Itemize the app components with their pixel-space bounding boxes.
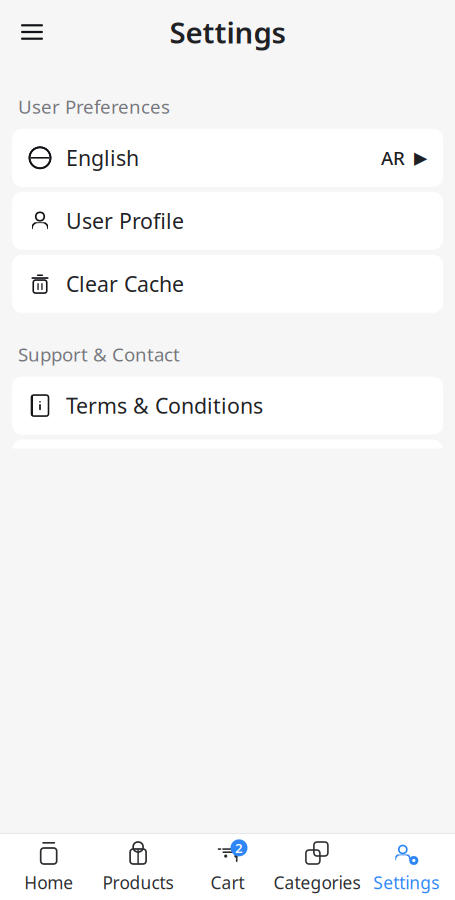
staticText: Home bbox=[24, 871, 73, 894]
staticText: Cart bbox=[210, 871, 244, 894]
staticText: User Profile bbox=[66, 207, 184, 235]
staticText: AR bbox=[381, 145, 405, 170]
staticText: Settings bbox=[373, 871, 439, 894]
button[interactable]: Settings bbox=[362, 834, 451, 900]
staticText: 2 bbox=[235, 839, 243, 857]
staticText: Products bbox=[103, 871, 174, 894]
staticText: ▶ bbox=[414, 148, 427, 168]
staticText: Clear Cache bbox=[66, 270, 184, 298]
staticText: Terms & Conditions bbox=[66, 391, 263, 420]
button[interactable]: Products bbox=[93, 834, 183, 900]
button[interactable]: Menu bbox=[10, 10, 54, 54]
staticText: English bbox=[66, 144, 139, 172]
staticText: User Preferences bbox=[18, 94, 170, 119]
button[interactable]: Terms & Conditions bbox=[12, 377, 443, 435]
staticText: Support & Contact bbox=[18, 342, 180, 367]
button[interactable]: English bbox=[12, 129, 443, 187]
button[interactable]: 2 bbox=[183, 834, 272, 900]
staticText: Settings bbox=[169, 12, 285, 51]
button[interactable]: About Us bbox=[12, 440, 443, 498]
staticText: Categories bbox=[273, 871, 360, 894]
button[interactable]: User Profile bbox=[12, 192, 443, 250]
button[interactable]: Home bbox=[4, 834, 93, 900]
button[interactable]: Categories bbox=[272, 834, 362, 900]
button[interactable]: Clear Cache bbox=[12, 255, 443, 313]
